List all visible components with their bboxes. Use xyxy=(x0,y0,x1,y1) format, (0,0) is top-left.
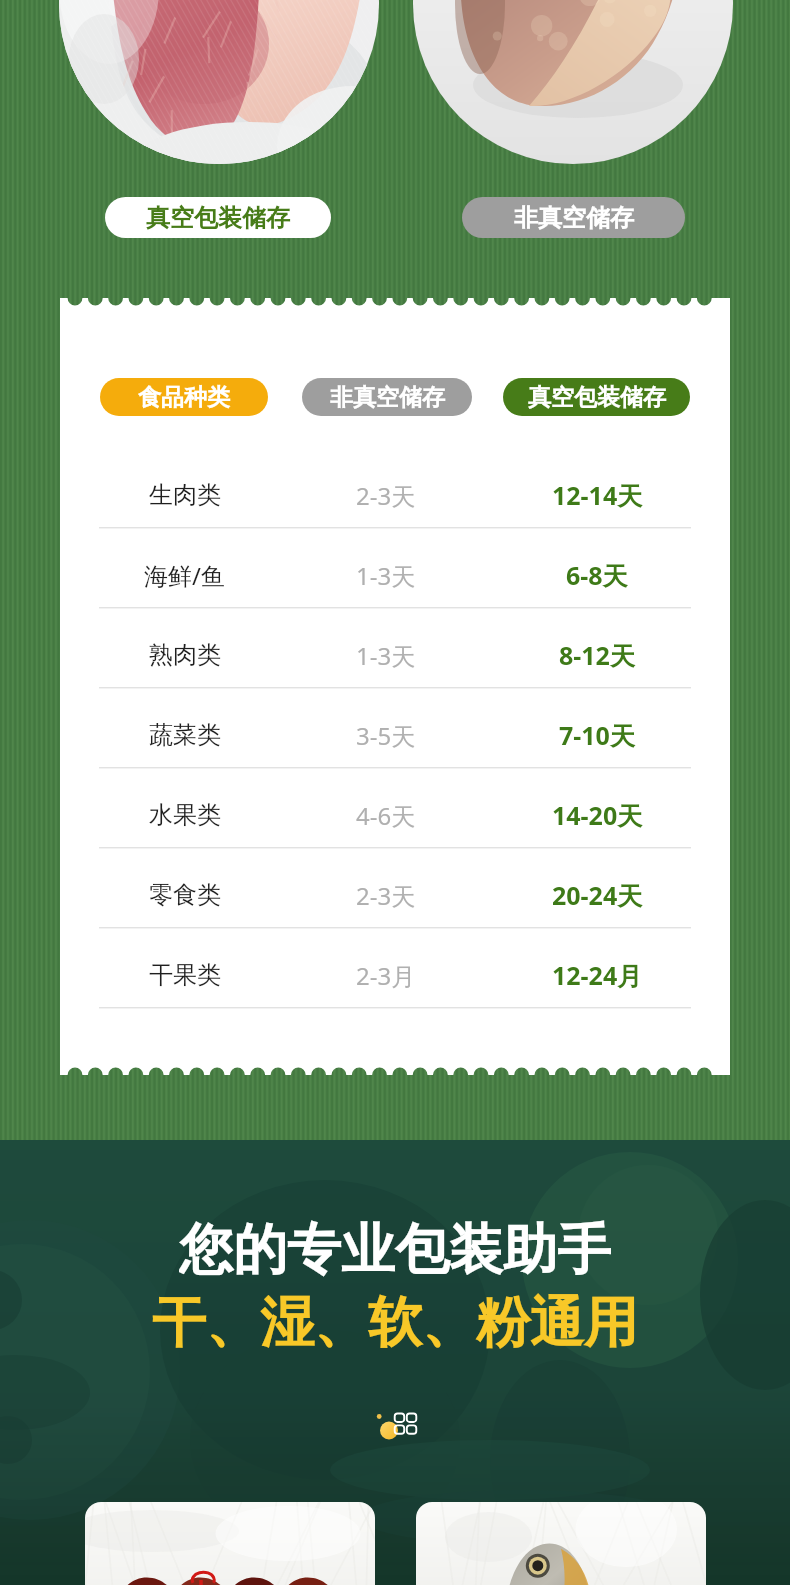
staticText: 真空包装储存 xyxy=(146,203,290,233)
button[interactable]: Features xyxy=(375,1411,419,1443)
button[interactable] xyxy=(416,1502,706,1585)
staticText: 2-3天 xyxy=(356,879,416,912)
button[interactable]: Vacuum sealed meat photo xyxy=(59,0,379,164)
button[interactable]: 干果类 xyxy=(0,943,790,1007)
staticText: 您的专业包装助手 xyxy=(179,1216,611,1278)
staticText: 蔬菜类 xyxy=(149,720,221,750)
staticText: 8-12天 xyxy=(559,638,635,672)
staticText: 2-3天 xyxy=(356,479,416,512)
staticText: 真空包装储存 xyxy=(528,383,666,412)
staticText: 干果类 xyxy=(149,960,221,990)
staticText: 6-8天 xyxy=(566,558,628,592)
staticText: 熟肉类 xyxy=(149,640,221,670)
button[interactable]: 海鲜/鱼 xyxy=(0,543,790,607)
staticText: 食品种类 xyxy=(138,383,230,412)
staticText: 水果类 xyxy=(149,800,221,830)
staticText: 干、湿、软、粉通用 xyxy=(152,1289,638,1351)
button[interactable]: 非真空储存 xyxy=(462,197,685,238)
staticText: 4-6天 xyxy=(356,799,416,832)
staticText: 非真空储存 xyxy=(514,203,634,233)
button[interactable]: 真空包装储存 xyxy=(503,378,690,416)
staticText: 1-3天 xyxy=(356,639,416,672)
staticText: 12-14天 xyxy=(552,478,643,512)
staticText: 生肉类 xyxy=(149,480,221,510)
staticText: 20-24天 xyxy=(552,878,643,912)
staticText: 零食类 xyxy=(149,880,221,910)
button[interactable]: 零食类 xyxy=(0,863,790,927)
staticText: 海鲜/鱼 xyxy=(144,559,225,592)
staticText: 非真空储存 xyxy=(330,383,445,412)
button[interactable]: 生肉类 xyxy=(0,463,790,527)
button[interactable]: 水果类 xyxy=(0,783,790,847)
button[interactable]: 熟肉类 xyxy=(0,623,790,687)
button[interactable]: 食品种类 xyxy=(100,378,268,416)
button[interactable]: 真空包装储存 xyxy=(105,197,331,238)
staticText: 12-24月 xyxy=(552,958,643,992)
button[interactable]: 非真空储存 xyxy=(302,378,472,416)
staticText: 2-3月 xyxy=(356,959,416,992)
staticText: 7-10天 xyxy=(559,718,635,752)
button[interactable]: Unsealed meat photo xyxy=(413,0,733,164)
staticText: 14-20天 xyxy=(552,798,643,832)
staticText: 1-3天 xyxy=(356,559,416,592)
button[interactable]: 蔬菜类 xyxy=(0,703,790,767)
button[interactable] xyxy=(85,1502,375,1585)
staticText: 3-5天 xyxy=(356,719,416,752)
